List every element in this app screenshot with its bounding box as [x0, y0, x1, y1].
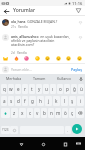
button[interactable]: ?123 — [1, 126, 10, 134]
staticText: i — [80, 98, 82, 104]
staticText: q — [3, 86, 6, 92]
staticText: b — [43, 110, 46, 116]
button[interactable]: m — [55, 108, 61, 118]
button[interactable]: ç — [69, 108, 75, 118]
button[interactable]: Emoji reaction — [56, 56, 61, 61]
button[interactable]: y — [36, 84, 42, 94]
button[interactable]: Kullanıcı — [52, 74, 77, 83]
staticText: ş — [71, 98, 74, 104]
button[interactable]: x — [19, 108, 26, 118]
button[interactable]: v — [34, 108, 40, 118]
button[interactable]: Tamam — [27, 74, 52, 83]
button[interactable]: . — [65, 126, 71, 134]
button[interactable]: Emoji reaction — [35, 56, 40, 61]
button[interactable]: Share — [75, 7, 82, 14]
button[interactable]: t — [29, 84, 35, 94]
button[interactable]: n — [48, 108, 54, 118]
staticText: n — [50, 110, 53, 116]
button[interactable]: ı — [50, 84, 56, 94]
button[interactable]: Hide keyboard — [74, 139, 83, 148]
button[interactable]: Emoji reaction — [66, 56, 71, 61]
button[interactable]: u — [43, 84, 49, 94]
staticText: r — [24, 86, 26, 92]
button[interactable]: Like — [77, 34, 83, 40]
button[interactable]: l — [61, 96, 68, 106]
button[interactable]: c — [27, 108, 33, 118]
staticText: l — [64, 98, 66, 104]
staticText: y — [38, 86, 41, 92]
button[interactable]: ö — [62, 108, 68, 118]
staticText: p — [66, 86, 69, 92]
button[interactable]: Recent apps — [60, 139, 70, 149]
staticText: Kullanıcı — [57, 76, 72, 81]
button[interactable]: ola_hans GONZALE MUJAN.? — [0, 19, 85, 29]
staticText: w — [9, 86, 13, 92]
button[interactable]: ş — [69, 96, 76, 106]
button[interactable]: z — [11, 108, 18, 118]
button[interactable]: i — [77, 96, 84, 106]
staticText: x — [21, 110, 24, 116]
button[interactable]: Send — [72, 124, 82, 134]
button[interactable]: b — [41, 108, 47, 118]
button[interactable]: Merhaba — [1, 74, 27, 83]
button[interactable]: d — [15, 96, 21, 106]
staticText: c — [29, 110, 32, 116]
button[interactable]: q — [1, 84, 7, 94]
staticText: u — [45, 86, 48, 92]
staticText: v — [36, 110, 39, 116]
staticText: ?123 — [2, 128, 9, 132]
staticText: ı — [52, 86, 54, 92]
button[interactable]: r — [22, 84, 28, 94]
staticText: Yanıtla — [17, 51, 27, 55]
button[interactable]: s — [8, 96, 14, 106]
button[interactable]: a — [1, 96, 7, 106]
button[interactable]: Backspace — [76, 108, 84, 118]
staticText: anis_alSunushoo en uyuk bazardan, ofirik… — [11, 34, 71, 47]
button[interactable]: j — [45, 96, 52, 106]
button[interactable]: f — [22, 96, 28, 106]
button[interactable]: Home — [38, 139, 48, 149]
button[interactable]: h — [37, 96, 44, 106]
staticText: 21s — [11, 25, 16, 29]
staticText: 11:16 — [72, 1, 83, 6]
button[interactable]: Back — [2, 7, 10, 15]
staticText: d — [17, 98, 20, 104]
button[interactable]: Emoji — [10, 126, 18, 134]
button[interactable]: Shift — [1, 108, 10, 118]
staticText: Yorum ekle... — [11, 67, 70, 72]
button[interactable]: Back — [16, 139, 26, 149]
staticText: Yorumlar — [13, 7, 36, 14]
button[interactable]: Like — [77, 19, 83, 25]
staticText: m — [56, 110, 61, 116]
staticText: Tamam — [33, 76, 46, 81]
staticText: g — [31, 98, 34, 104]
button[interactable]: p — [64, 84, 70, 94]
button[interactable]: o — [57, 84, 63, 94]
button[interactable]: Emoji reaction — [3, 56, 8, 61]
staticText: ö — [64, 110, 67, 116]
staticText: j — [48, 98, 50, 104]
button[interactable]: k — [53, 96, 60, 106]
staticText: o — [59, 86, 62, 92]
staticText: f — [24, 98, 26, 104]
staticText: ola_hans GONZALE MUJAN.? — [11, 19, 58, 24]
staticText: ğ — [73, 86, 76, 92]
button[interactable]: anis_alSunushoo en uyuk bazardan, ofirik… — [0, 34, 85, 55]
button[interactable]: g — [29, 96, 36, 106]
button[interactable]: ğ — [71, 84, 77, 94]
staticText: z — [13, 110, 16, 116]
button[interactable]: Voice input — [77, 75, 84, 82]
button[interactable]: e — [15, 84, 21, 94]
button[interactable]: ü — [78, 84, 84, 94]
button[interactable]: Paylaş — [70, 66, 83, 73]
button[interactable]: Emoji reaction — [45, 56, 50, 61]
staticText: . — [67, 128, 69, 133]
button[interactable]: Emoji reaction — [14, 56, 19, 61]
button[interactable]: Emoji reaction — [77, 56, 82, 61]
button[interactable]: w — [8, 84, 14, 94]
staticText: e — [17, 86, 20, 92]
staticText: t — [31, 86, 33, 92]
staticText: ç — [71, 110, 74, 116]
button[interactable]: Emoji reaction — [24, 56, 29, 61]
